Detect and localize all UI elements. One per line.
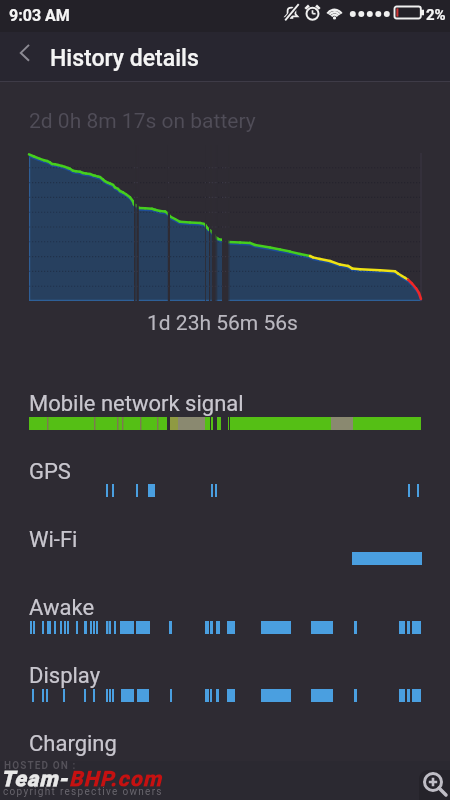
staticText: 2%	[426, 6, 446, 24]
staticText: Mobile network signal	[29, 391, 244, 417]
staticText: Wi-Fi	[29, 527, 78, 553]
staticText: 1d 23h 56m 56s	[147, 311, 298, 336]
button[interactable]: Back	[2, 32, 48, 81]
staticText: 9:03 AM	[9, 6, 70, 25]
staticText: 2d 0h 8m 17s on battery	[29, 109, 256, 134]
staticText: History details	[50, 45, 199, 72]
staticText: copyright respective owners	[3, 786, 163, 798]
staticText: BHP.com	[69, 767, 163, 792]
staticText: Charging	[29, 731, 117, 757]
staticText: Team-	[1, 767, 69, 792]
staticText: Display	[29, 663, 101, 689]
staticText: GPS	[29, 459, 71, 485]
staticText: Awake	[29, 595, 95, 621]
staticText: HOSTED ON :	[4, 760, 77, 772]
button[interactable]: Zoom in	[419, 770, 450, 800]
